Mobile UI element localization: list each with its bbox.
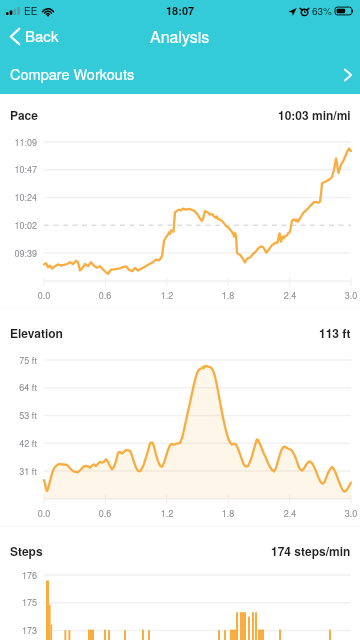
staticText: 1.2: [153, 507, 181, 520]
staticText: 10:03 min/mi: [278, 106, 351, 123]
staticText: 10:47: [3, 163, 37, 176]
staticText: 10:02: [3, 219, 37, 232]
staticText: 2.4: [276, 289, 304, 302]
staticText: Back: [25, 25, 59, 46]
staticText: 174 steps/min: [271, 542, 351, 559]
staticText: 176: [3, 569, 37, 582]
staticText: 3.0: [337, 507, 360, 520]
staticText: 11:09: [3, 136, 37, 149]
staticText: 175: [3, 596, 37, 609]
staticText: EE: [24, 4, 38, 18]
staticText: 3.0: [337, 289, 360, 302]
staticText: Analysis: [150, 25, 210, 48]
staticText: 2.4: [276, 507, 304, 520]
staticText: 1.8: [214, 289, 242, 302]
staticText: 31 ft: [3, 465, 37, 478]
staticText: 0.6: [91, 289, 119, 302]
staticText: 10:24: [3, 191, 37, 204]
other: Open compare workouts: [344, 69, 352, 81]
staticText: 0.0: [30, 289, 58, 302]
staticText: Compare Workouts: [10, 63, 135, 84]
button[interactable]: Back: [10, 26, 59, 47]
staticText: 75 ft: [3, 354, 37, 367]
staticText: 0.6: [91, 507, 119, 520]
staticText: 173: [3, 624, 37, 637]
button[interactable]: Compare Workouts: [0, 56, 360, 94]
staticText: 63%: [312, 4, 333, 18]
staticText: 1.2: [153, 289, 181, 302]
staticText: 0.0: [30, 507, 58, 520]
staticText: 18:07: [166, 3, 195, 19]
staticText: Steps: [10, 542, 43, 559]
staticText: 1.8: [214, 507, 242, 520]
staticText: 42 ft: [3, 437, 37, 450]
staticText: 53 ft: [3, 409, 37, 422]
staticText: Elevation: [10, 324, 63, 341]
staticText: Pace: [10, 106, 38, 123]
staticText: 64 ft: [3, 381, 37, 394]
staticText: 09:39: [3, 247, 37, 260]
staticText: 113 ft: [319, 324, 351, 341]
